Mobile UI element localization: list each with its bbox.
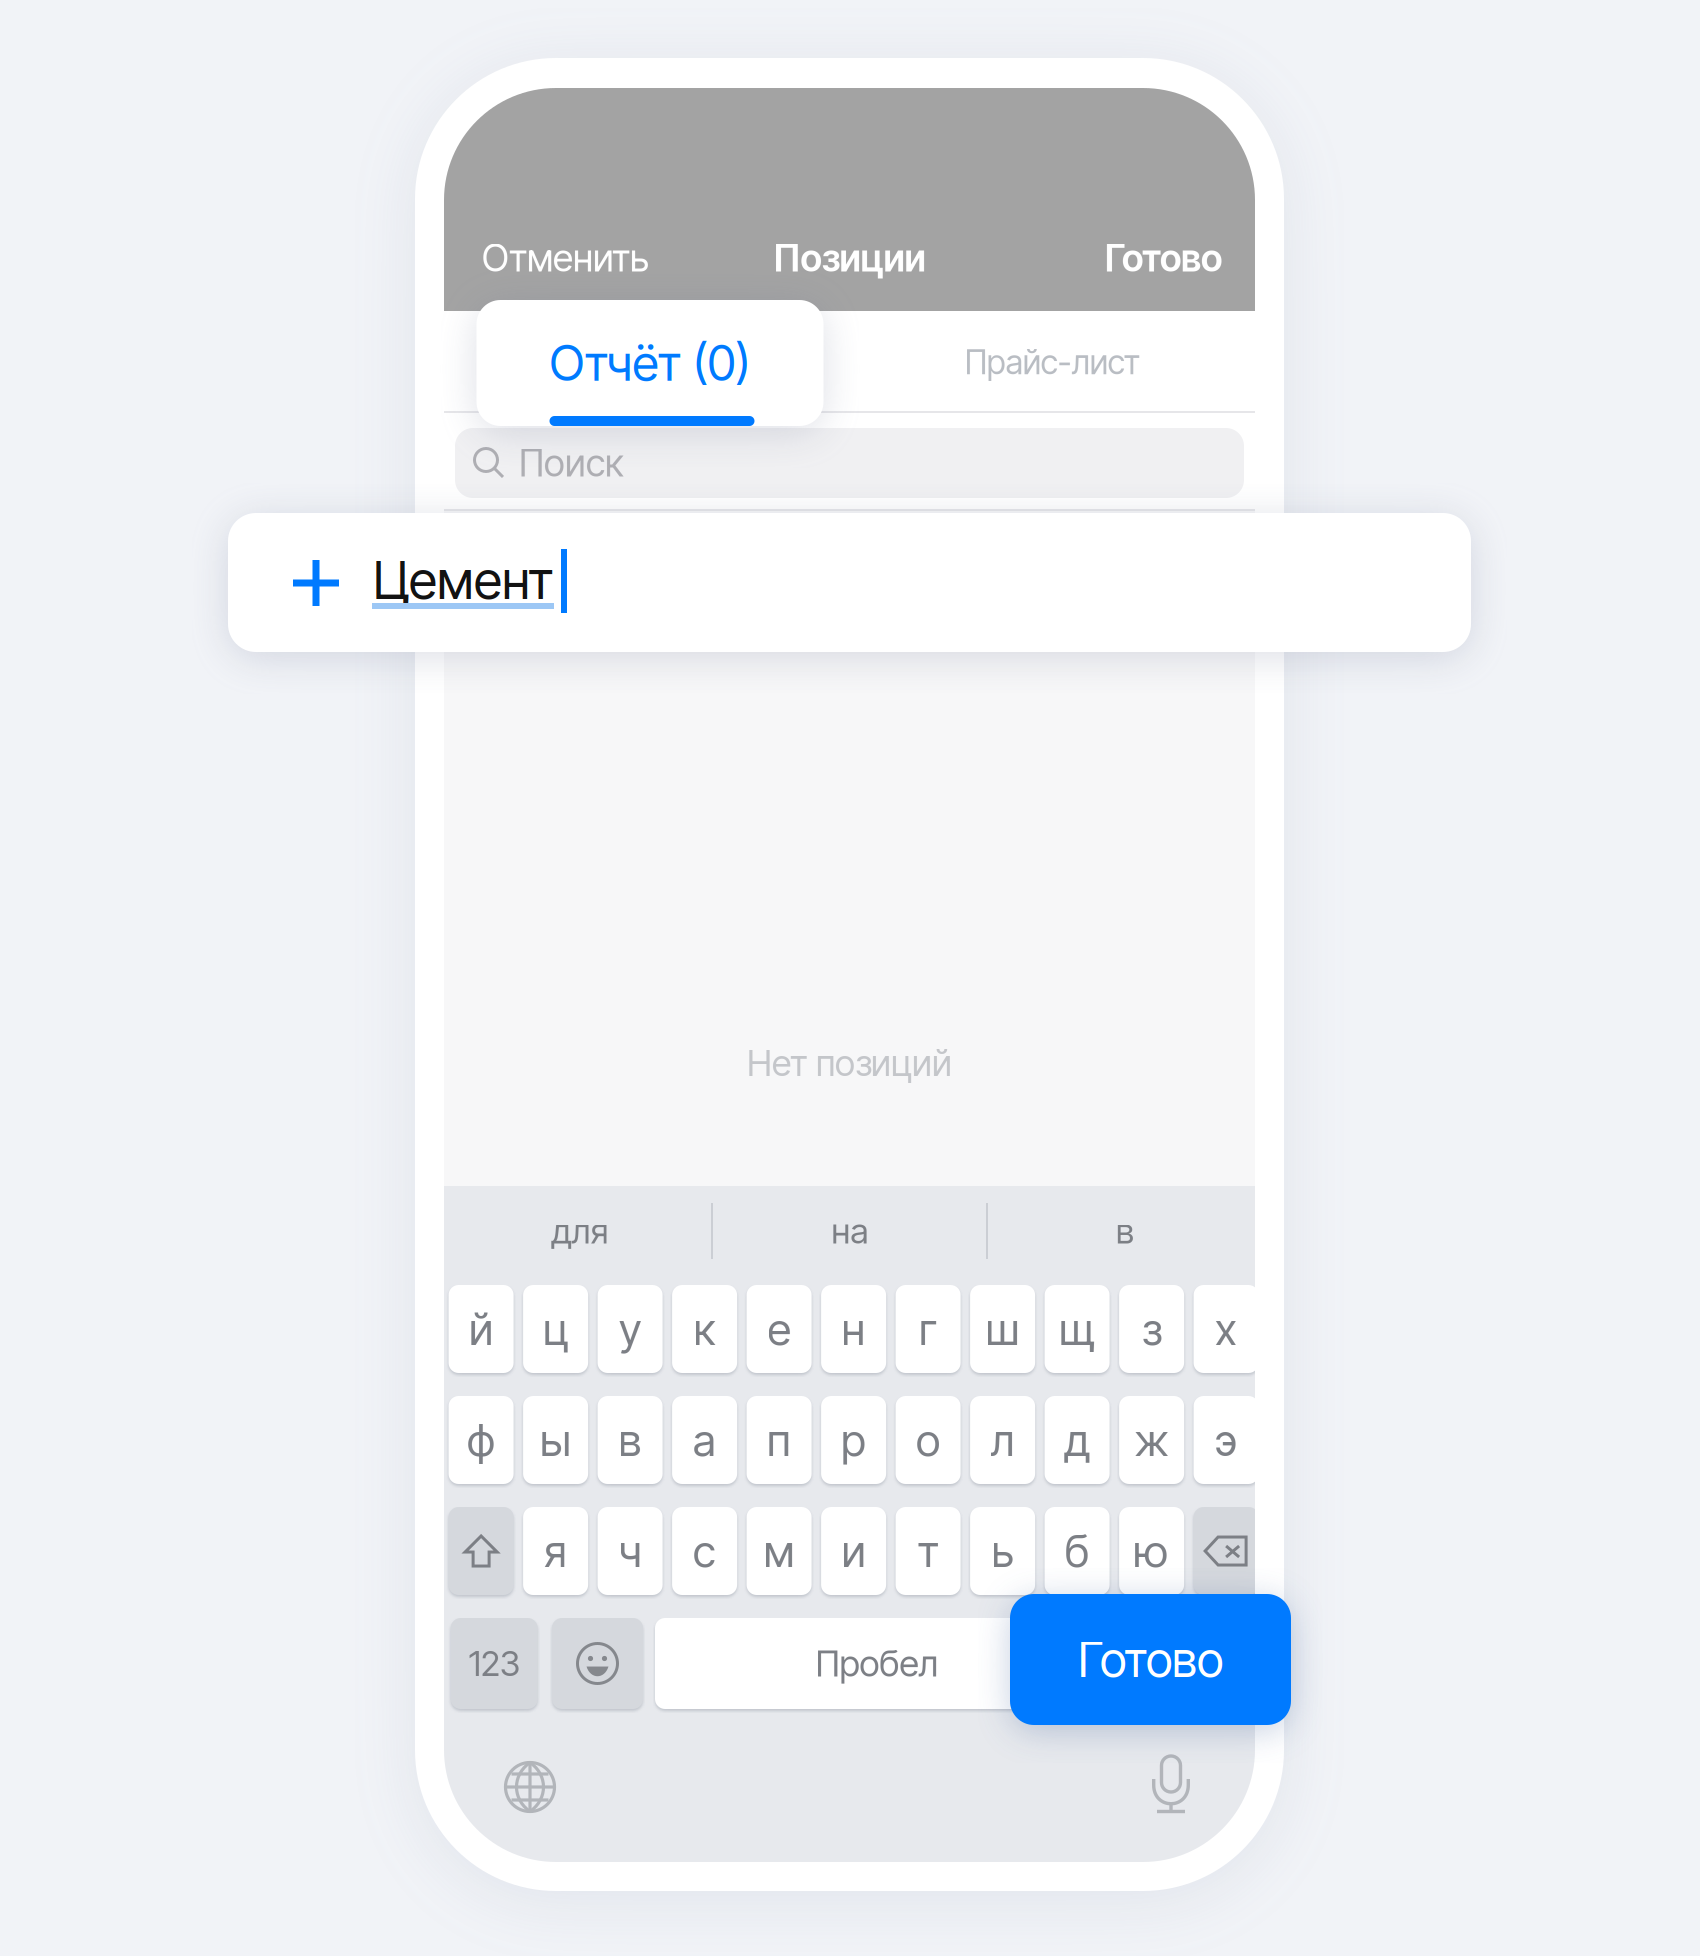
staticText: я — [544, 1524, 567, 1578]
button[interactable]: б — [1045, 1507, 1110, 1595]
staticText: в — [1116, 1210, 1134, 1252]
staticText: ч — [619, 1524, 642, 1578]
staticText: Позиции — [773, 235, 925, 281]
button[interactable]: а — [672, 1396, 737, 1484]
button[interactable]: на — [720, 1191, 980, 1271]
button[interactable]: з — [1119, 1285, 1184, 1373]
button[interactable]: Готово — [1010, 1594, 1291, 1725]
button[interactable]: Next keyboard — [504, 1761, 556, 1813]
button[interactable]: Отчёт (0) — [476, 300, 823, 426]
staticText: Нет позиций — [747, 1041, 952, 1085]
button[interactable]: и — [821, 1507, 886, 1595]
button[interactable]: у — [598, 1285, 663, 1373]
staticText: м — [764, 1524, 795, 1578]
staticText: Отчёт (0) — [567, 339, 727, 385]
staticText: о — [916, 1413, 940, 1467]
button[interactable]: м — [747, 1507, 812, 1595]
staticText: у — [619, 1302, 641, 1356]
button[interactable]: г — [896, 1285, 961, 1373]
staticText: и — [842, 1524, 866, 1578]
staticText: з — [1142, 1302, 1162, 1356]
staticText: в — [619, 1413, 642, 1467]
staticText: й — [469, 1302, 493, 1356]
button[interactable]: Прайс-лист — [849, 311, 1255, 413]
staticText: на — [831, 1210, 868, 1252]
button[interactable]: ф — [449, 1396, 514, 1484]
button[interactable]: для — [450, 1191, 710, 1271]
button[interactable]: п — [747, 1396, 812, 1484]
staticText: т — [918, 1524, 939, 1578]
button[interactable]: 123 — [451, 1618, 538, 1709]
staticText: г — [919, 1302, 937, 1356]
button[interactable]: с — [672, 1507, 737, 1595]
button[interactable]: в — [995, 1191, 1255, 1271]
staticText: э — [1215, 1413, 1237, 1467]
staticText: Готово — [1105, 235, 1222, 281]
button[interactable]: х — [1194, 1285, 1259, 1373]
staticText: ж — [1135, 1413, 1169, 1467]
button[interactable]: Backspace — [1194, 1507, 1259, 1595]
staticText: щ — [1059, 1302, 1095, 1356]
staticText: Отменить — [482, 235, 649, 281]
button[interactable]: Dictate — [1152, 1755, 1190, 1813]
button[interactable]: э — [1194, 1396, 1259, 1484]
button[interactable]: й — [449, 1285, 514, 1373]
staticText: Готово — [1078, 1630, 1223, 1689]
staticText: Поиск — [519, 440, 623, 486]
button[interactable]: Готово — [1072, 230, 1222, 286]
staticText: ю — [1135, 1524, 1169, 1578]
button[interactable]: щ — [1045, 1285, 1110, 1373]
button[interactable]: л — [970, 1396, 1035, 1484]
staticText: е — [768, 1302, 791, 1356]
staticText: д — [1065, 1413, 1090, 1467]
button[interactable]: ц — [523, 1285, 588, 1373]
staticText: ы — [540, 1413, 571, 1467]
staticText: Пробел — [815, 1642, 938, 1685]
staticText: Отчёт (0) — [549, 334, 750, 392]
button[interactable]: Отчёт (0) — [444, 311, 849, 413]
staticText: а — [693, 1413, 716, 1467]
button[interactable]: Пробел — [655, 1618, 1099, 1709]
staticText: с — [693, 1524, 716, 1578]
staticText: р — [841, 1413, 866, 1467]
button[interactable]: о — [896, 1396, 961, 1484]
button[interactable]: я — [523, 1507, 588, 1595]
button[interactable]: в — [598, 1396, 663, 1484]
staticText: для — [551, 1210, 608, 1252]
staticText: п — [767, 1413, 791, 1467]
button[interactable]: ю — [1119, 1507, 1184, 1595]
staticText: к — [694, 1302, 716, 1356]
staticText: л — [991, 1413, 1015, 1467]
staticText: ь — [992, 1524, 1014, 1578]
staticText: ф — [467, 1413, 495, 1467]
button[interactable]: ы — [523, 1396, 588, 1484]
staticText: х — [1215, 1302, 1237, 1356]
button[interactable]: ж — [1119, 1396, 1184, 1484]
button[interactable]: ч — [598, 1507, 663, 1595]
button[interactable]: Shift — [449, 1507, 514, 1595]
staticText: ш — [986, 1302, 1020, 1356]
button[interactable]: ь — [970, 1507, 1035, 1595]
staticText: н — [842, 1302, 866, 1356]
staticText: Прайс-лист — [965, 342, 1140, 382]
button[interactable]: Поиск — [455, 428, 1244, 498]
staticText: ц — [543, 1302, 568, 1356]
button[interactable]: Add line item — [293, 560, 339, 606]
button[interactable]: Отменить — [482, 230, 662, 286]
button[interactable]: к — [672, 1285, 737, 1373]
button[interactable]: д — [1045, 1396, 1110, 1484]
staticText: б — [1065, 1524, 1089, 1578]
button[interactable]: е — [747, 1285, 812, 1373]
button[interactable]: Emoji — [552, 1618, 643, 1709]
staticText: Цемент — [373, 548, 553, 611]
button[interactable]: р — [821, 1396, 886, 1484]
button[interactable]: т — [896, 1507, 961, 1595]
staticText: 123 — [469, 1642, 520, 1684]
button[interactable]: н — [821, 1285, 886, 1373]
button[interactable]: ш — [970, 1285, 1035, 1373]
